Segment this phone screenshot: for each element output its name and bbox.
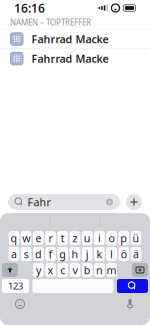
staticText: u bbox=[84, 231, 91, 245]
button[interactable]: Diktat bbox=[120, 297, 140, 311]
staticText: t bbox=[61, 231, 65, 245]
staticText: k bbox=[96, 247, 102, 261]
staticText: 123 bbox=[8, 280, 23, 292]
button[interactable]: h bbox=[70, 247, 80, 261]
staticText: ä bbox=[133, 247, 139, 261]
button[interactable]: ä bbox=[131, 247, 141, 261]
staticText: s bbox=[24, 247, 29, 261]
button[interactable]: Suche abbrechen bbox=[126, 194, 142, 210]
staticText: f bbox=[49, 247, 53, 261]
button[interactable]: Fahrrad Macke bbox=[0, 29, 150, 48]
staticText: Fahrrad Macke bbox=[31, 32, 108, 46]
staticText: Fahrrad Macke bbox=[31, 51, 108, 66]
button[interactable]: Löschen bbox=[132, 263, 148, 277]
staticText: ö bbox=[121, 247, 127, 261]
button[interactable]: c bbox=[57, 263, 68, 277]
button[interactable]: ö bbox=[118, 247, 129, 261]
staticText: g bbox=[59, 247, 66, 261]
button[interactable]: Umschalt bbox=[2, 263, 18, 277]
button[interactable]: p bbox=[118, 231, 129, 245]
button[interactable]: a bbox=[9, 247, 19, 261]
button[interactable]: q bbox=[9, 231, 19, 245]
button[interactable]: o bbox=[106, 231, 117, 245]
staticText: i bbox=[98, 231, 101, 245]
button[interactable]: k bbox=[94, 247, 105, 261]
button[interactable]: i bbox=[94, 231, 105, 245]
staticText: m bbox=[107, 263, 117, 277]
staticText: r bbox=[49, 231, 53, 245]
staticText: b bbox=[84, 263, 91, 277]
button[interactable]: g bbox=[57, 247, 68, 261]
staticText: n bbox=[96, 263, 103, 277]
button[interactable]: Suchen bbox=[117, 279, 148, 293]
button[interactable]: l bbox=[106, 247, 117, 261]
button[interactable]: ü bbox=[131, 231, 141, 245]
button[interactable]: 123 bbox=[2, 279, 29, 293]
staticText: ü bbox=[132, 231, 139, 245]
staticText: z bbox=[72, 231, 77, 245]
staticText: w bbox=[22, 231, 30, 245]
button[interactable]: j bbox=[82, 247, 92, 261]
button[interactable]: v bbox=[70, 263, 80, 277]
staticText: q bbox=[10, 231, 17, 245]
staticText: 16:16 bbox=[14, 0, 45, 16]
button[interactable]: Fahr bbox=[8, 194, 120, 210]
button[interactable]: Leerzeichen bbox=[32, 279, 113, 293]
button[interactable]: t bbox=[57, 231, 68, 245]
staticText: o bbox=[109, 231, 115, 245]
button[interactable]: x bbox=[45, 263, 56, 277]
staticText: d bbox=[35, 247, 42, 261]
staticText: y bbox=[36, 263, 41, 277]
staticText: p bbox=[120, 231, 127, 245]
staticText: Fahr bbox=[27, 195, 50, 209]
button[interactable]: u bbox=[82, 231, 92, 245]
button[interactable]: r bbox=[45, 231, 56, 245]
staticText: j bbox=[86, 247, 89, 261]
staticText: h bbox=[71, 247, 78, 261]
staticText: NAMEN – TOPTREFFER bbox=[10, 17, 91, 28]
button[interactable]: Emoji bbox=[10, 297, 30, 311]
staticText: l bbox=[110, 247, 113, 261]
button[interactable]: f bbox=[45, 247, 56, 261]
button[interactable]: e bbox=[33, 231, 44, 245]
staticText: e bbox=[35, 231, 41, 245]
button[interactable]: s bbox=[21, 247, 31, 261]
button[interactable]: b bbox=[82, 263, 92, 277]
button[interactable]: m bbox=[106, 263, 117, 277]
button[interactable]: w bbox=[21, 231, 31, 245]
button[interactable]: n bbox=[94, 263, 105, 277]
button[interactable]: z bbox=[70, 231, 80, 245]
staticText: c bbox=[60, 263, 65, 277]
staticText: a bbox=[11, 247, 17, 261]
staticText: x bbox=[48, 263, 54, 277]
button[interactable]: Fahrrad Macke bbox=[0, 49, 150, 68]
button[interactable]: d bbox=[33, 247, 44, 261]
staticText: v bbox=[72, 263, 77, 277]
button[interactable]: y bbox=[33, 263, 44, 277]
